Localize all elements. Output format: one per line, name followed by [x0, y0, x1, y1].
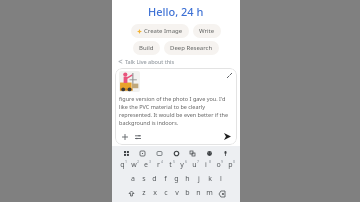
button[interactable]: m [204, 187, 215, 199]
staticText: c [164, 188, 168, 198]
button[interactable]: emoji [205, 149, 214, 158]
button[interactable]: Backspace [215, 188, 229, 199]
staticText: l [220, 174, 222, 184]
button[interactable]: p [224, 159, 236, 171]
staticText: d [152, 174, 157, 184]
button[interactable]: l [215, 173, 226, 185]
button[interactable]: settings [172, 149, 181, 158]
staticText: q [120, 160, 125, 170]
button[interactable]: Deep Research [164, 41, 219, 55]
button[interactable]: mic [221, 149, 230, 158]
staticText: a [131, 174, 135, 184]
button[interactable]: v [171, 187, 182, 199]
staticText: j [198, 174, 200, 184]
staticText: 1 [125, 159, 128, 164]
staticText: 3 [149, 159, 152, 164]
staticText: 2 [137, 159, 140, 164]
button[interactable]: sticker [138, 149, 147, 158]
staticText: v [175, 188, 179, 198]
staticText: 5 [173, 159, 176, 164]
button[interactable]: translate [188, 149, 197, 158]
button[interactable]: n [193, 187, 204, 199]
staticText: figure version of the photo I gave you. … [119, 95, 233, 127]
staticText: y [180, 160, 184, 170]
button[interactable]: x [149, 187, 160, 199]
button[interactable]: h [182, 173, 193, 185]
staticText: w [131, 160, 137, 170]
staticText: x [153, 188, 157, 198]
button[interactable]: u [188, 159, 200, 171]
staticText: 4 [161, 159, 164, 164]
staticText: 8 [209, 159, 212, 164]
button[interactable]: grid [122, 149, 131, 158]
button[interactable]: q [116, 159, 128, 171]
staticText: Talk Live about this [125, 58, 175, 65]
button[interactable]: e [140, 159, 152, 171]
staticText: i [205, 160, 207, 170]
button[interactable]: Expand [225, 71, 233, 79]
button[interactable]: Tools [132, 131, 143, 142]
button[interactable]: r [152, 159, 164, 171]
button[interactable]: Send [222, 131, 233, 142]
button[interactable]: t [164, 159, 176, 171]
button[interactable]: f [160, 173, 171, 185]
button[interactable]: k [204, 173, 215, 185]
staticText: Deep Research [170, 44, 213, 52]
button[interactable]: d [149, 173, 160, 185]
button[interactable]: a [127, 173, 138, 185]
button[interactable]: c [160, 187, 171, 199]
button[interactable]: s [138, 173, 149, 185]
staticText: o [216, 160, 221, 170]
staticText: Hello, 24 h [148, 4, 204, 19]
staticText: 7 [197, 159, 200, 164]
button[interactable]: b [182, 187, 193, 199]
button[interactable]: Talk Live about this [112, 58, 240, 65]
staticText: m [206, 188, 213, 198]
staticText: Create Image [144, 27, 183, 35]
button[interactable]: gif [155, 149, 164, 158]
button[interactable]: j [193, 173, 204, 185]
button[interactable]: Create Image [131, 24, 189, 38]
button[interactable]: Attached image [119, 71, 140, 92]
staticText: z [142, 188, 146, 198]
staticText: 0 [233, 159, 236, 164]
button[interactable]: Add [119, 131, 130, 142]
staticText: t [169, 160, 172, 170]
staticText: b [185, 188, 190, 198]
button[interactable]: y [176, 159, 188, 171]
button[interactable]: w [128, 159, 140, 171]
button[interactable]: o [212, 159, 224, 171]
button[interactable]: i [200, 159, 212, 171]
staticText: h [185, 174, 190, 184]
staticText: s [142, 174, 146, 184]
staticText: Write [199, 27, 215, 35]
staticText: f [164, 174, 167, 184]
staticText: e [144, 160, 148, 170]
staticText: p [228, 160, 233, 170]
button[interactable]: Build [133, 41, 160, 55]
button[interactable]: Write [193, 24, 221, 38]
staticText: Build [139, 44, 154, 52]
staticText: u [192, 160, 197, 170]
button[interactable]: Shift [124, 188, 138, 199]
button[interactable]: z [138, 187, 149, 199]
staticText: 6 [185, 159, 188, 164]
staticText: g [174, 174, 179, 184]
button[interactable]: g [171, 173, 182, 185]
staticText: 9 [221, 159, 224, 164]
staticText: r [157, 160, 160, 170]
staticText: n [196, 188, 201, 198]
staticText: k [208, 174, 212, 184]
